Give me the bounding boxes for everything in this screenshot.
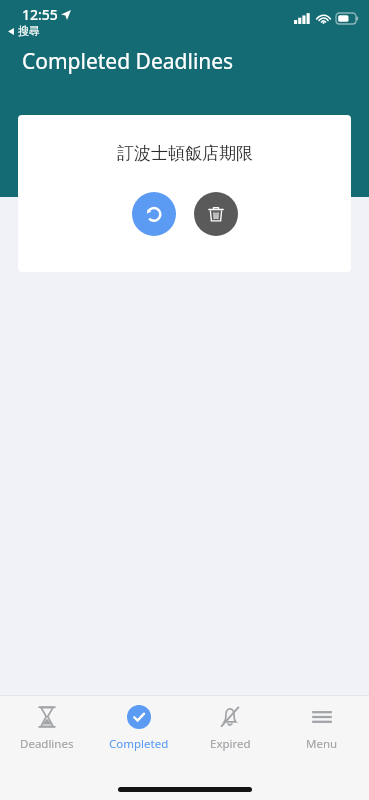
staticText: 搜尋 xyxy=(18,24,40,38)
staticText: Expired xyxy=(210,736,251,752)
button[interactable]: Completed xyxy=(94,696,184,752)
staticText: 訂波士頓飯店期限 xyxy=(117,143,253,164)
staticText: Completed Deadlines xyxy=(22,47,234,76)
staticText: 12:55 xyxy=(22,5,58,24)
button[interactable]: Deadlines xyxy=(2,696,92,752)
button[interactable]: Delete deadline xyxy=(194,192,238,236)
button[interactable]: Menu xyxy=(277,696,367,752)
staticText: Menu xyxy=(306,736,338,752)
staticText: Deadlines xyxy=(20,736,74,752)
button[interactable]: Restore deadline xyxy=(132,192,176,236)
staticText: Completed xyxy=(109,736,169,752)
button[interactable]: Expired xyxy=(185,696,275,752)
button[interactable]: 訂波士頓飯店期限 xyxy=(18,115,351,272)
